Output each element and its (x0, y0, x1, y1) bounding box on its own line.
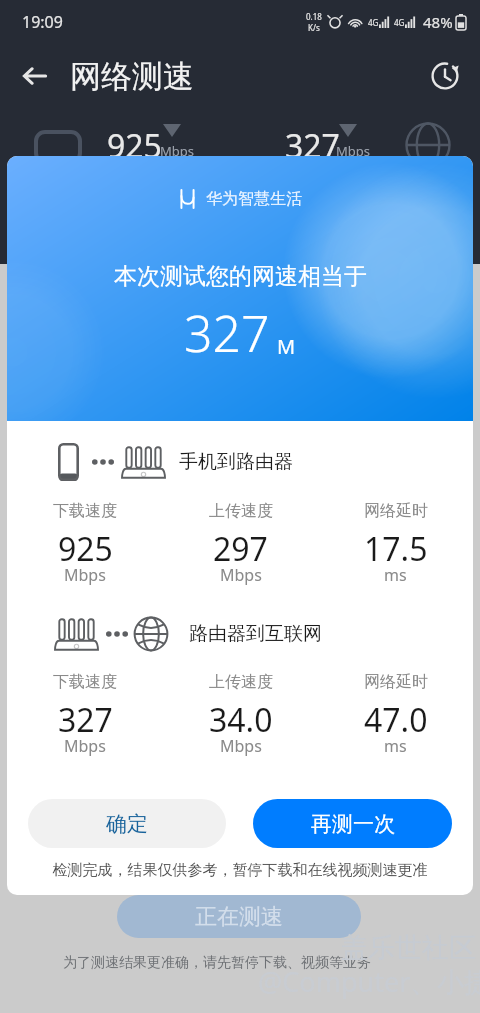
staticText: K/s (308, 22, 320, 33)
staticText: 确定 (106, 811, 148, 837)
staticText: 下载速度 (53, 501, 117, 521)
staticText: 47.0 (364, 698, 428, 742)
staticText: 17.5 (364, 527, 428, 571)
button[interactable]: 正在测速 (117, 895, 361, 938)
staticText: 4G (394, 17, 405, 28)
staticText: 网络延时 (364, 501, 428, 521)
button[interactable]: History (410, 40, 480, 112)
staticText: 925 (58, 527, 113, 571)
staticText: 4G (368, 17, 379, 28)
staticText: 48% (423, 12, 453, 32)
staticText: 路由器到互联网 (189, 622, 322, 646)
staticText: Mbps (160, 142, 195, 160)
staticText: 网络延时 (364, 672, 428, 692)
staticText: 297 (213, 527, 268, 571)
staticText: 上传速度 (209, 501, 273, 521)
staticText: 327 (58, 698, 113, 742)
staticText: 925 (107, 124, 162, 168)
button[interactable]: 确定 (28, 799, 226, 848)
button[interactable]: Back (0, 40, 70, 112)
staticText: ms (384, 735, 407, 757)
staticText: 本次测试您的网速相当于 (114, 262, 367, 291)
staticText: 正在测速 (195, 903, 283, 931)
staticText: 为了测速结果更准确，请先暂停下载、视频等业务 (0, 954, 457, 972)
staticText: Mbps (64, 564, 106, 586)
staticText: 再测一次 (311, 811, 395, 837)
staticText: ms (384, 564, 407, 586)
staticText: 华为智慧生活 (206, 189, 302, 209)
staticText: Mbps (336, 142, 371, 160)
staticText: 检测完成，结果仅供参考，暂停下载和在线视频测速更准 (7, 861, 473, 880)
staticText: Mbps (220, 564, 262, 586)
staticText: Mbps (64, 735, 106, 757)
staticText: 下载速度 (53, 672, 117, 692)
staticText: 手机到路由器 (179, 450, 293, 474)
staticText: 19:09 (22, 11, 63, 33)
staticText: 0.18 (306, 11, 322, 22)
staticText: @Computer、小捷 (258, 963, 480, 1000)
staticText: 上传速度 (209, 672, 273, 692)
button[interactable]: 再测一次 (253, 799, 452, 848)
staticText: 327 (285, 124, 340, 168)
staticText: 34.0 (209, 698, 273, 742)
staticText: 327 (184, 299, 270, 367)
staticText: 盖乐世社区 (341, 931, 476, 965)
staticText: 网络测速 (70, 57, 194, 96)
staticText: Mbps (220, 735, 262, 757)
staticText: M (277, 333, 296, 360)
